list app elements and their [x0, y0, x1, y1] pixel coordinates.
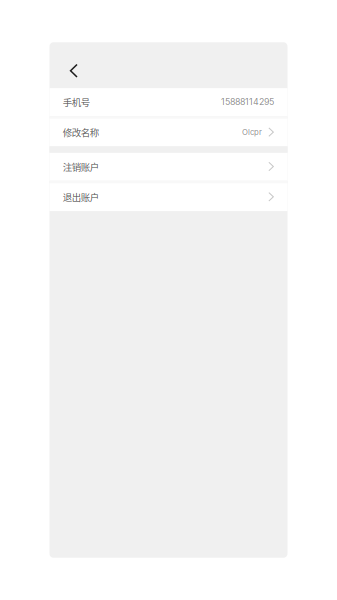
staticText: 退出账户 [63, 190, 99, 204]
button[interactable]: 修改名称 [49, 118, 287, 146]
staticText: 手机号 [63, 95, 90, 109]
staticText: Olcpr [242, 127, 262, 137]
staticText: 修改名称 [63, 125, 99, 139]
staticText: 15888114295 [221, 96, 274, 107]
button[interactable]: Back [49, 42, 90, 86]
button[interactable]: 注销账户 [49, 153, 287, 181]
button[interactable]: 手机号 [49, 88, 287, 116]
button[interactable]: 退出账户 [49, 183, 287, 211]
staticText: 注销账户 [63, 160, 99, 173]
